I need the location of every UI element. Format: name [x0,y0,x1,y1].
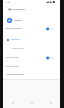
staticText: Default sound [12,47,24,49]
button[interactable]: Recents [41,97,60,108]
button[interactable]: Show notifications [3,24,60,33]
staticText: Show notifications [6,27,23,30]
staticText: Notification settings [6,73,24,76]
button[interactable]: Notification settings [3,70,60,79]
staticText: 12:30 [5,1,10,4]
button[interactable]: Back [3,97,22,108]
button[interactable]: Toggle [46,27,54,31]
button[interactable]: Pop on screen [3,62,60,71]
staticText: Advanced [11,38,20,41]
staticText: Sync over text [6,56,19,59]
button[interactable]: Back [6,6,12,13]
staticText: Messages [14,19,23,21]
staticText: Pop on screen [6,65,19,68]
button[interactable]: Advanced [3,36,60,45]
button[interactable]: Toggle [46,56,54,60]
staticText: App notifications [9,8,26,11]
button[interactable]: Default sound [3,44,60,53]
button[interactable]: Sync over text [3,53,60,62]
button[interactable]: Messages [3,15,60,25]
button[interactable]: Home [22,97,41,108]
